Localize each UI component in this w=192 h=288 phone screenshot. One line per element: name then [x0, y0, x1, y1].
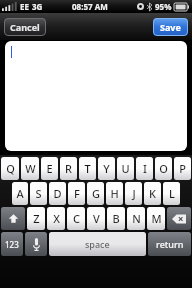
- staticText: return: [156, 238, 184, 250]
- staticText: 95%: [155, 1, 172, 12]
- button[interactable]: M: [147, 207, 165, 230]
- staticText: X: [53, 211, 60, 226]
- staticText: S: [35, 186, 42, 201]
- button[interactable]: C: [67, 207, 85, 230]
- button[interactable]: J: [125, 182, 142, 205]
- staticText: V: [93, 211, 100, 226]
- button[interactable]: V: [87, 207, 105, 230]
- staticText: 3G: [32, 1, 43, 12]
- staticText: A: [16, 186, 24, 201]
- staticText: B: [112, 211, 120, 226]
- staticText: M: [151, 211, 162, 226]
- button[interactable]: U: [117, 157, 134, 180]
- button[interactable]: K: [144, 182, 161, 205]
- button[interactable]: X: [47, 207, 65, 230]
- button[interactable]: Z: [27, 207, 45, 230]
- button[interactable]: Shift: [1, 207, 25, 230]
- button[interactable]: Save: [153, 18, 188, 36]
- staticText: EE: [20, 1, 29, 12]
- button[interactable]: I: [136, 157, 153, 180]
- button[interactable]: H: [106, 182, 123, 205]
- button[interactable]: 123: [1, 232, 23, 256]
- button[interactable]: P: [174, 157, 191, 180]
- staticText: 08:57 AM: [72, 1, 108, 12]
- staticText: 123: [5, 239, 19, 250]
- staticText: K: [149, 186, 156, 201]
- staticText: N: [132, 211, 141, 226]
- button[interactable]: N: [127, 207, 145, 230]
- button[interactable]: E: [41, 157, 58, 180]
- staticText: Q: [6, 161, 15, 176]
- staticText: J: [132, 186, 136, 201]
- button[interactable]: Cancel: [4, 18, 46, 36]
- button[interactable]: T: [79, 157, 96, 180]
- staticText: O: [159, 161, 168, 176]
- button[interactable]: B: [107, 207, 125, 230]
- staticText: Save: [160, 21, 181, 33]
- button[interactable]: space: [49, 232, 146, 256]
- button[interactable]: [5, 41, 187, 151]
- button[interactable]: Backspace: [167, 207, 191, 230]
- staticText: D: [53, 186, 62, 201]
- button[interactable]: L: [163, 182, 180, 205]
- button[interactable]: S: [30, 182, 47, 205]
- staticText: R: [65, 161, 72, 176]
- staticText: space: [85, 238, 110, 250]
- button[interactable]: Y: [98, 157, 115, 180]
- staticText: G: [92, 186, 100, 201]
- staticText: Z: [33, 211, 40, 226]
- staticText: I: [143, 161, 147, 176]
- staticText: F: [74, 186, 80, 201]
- button[interactable]: R: [60, 157, 77, 180]
- staticText: P: [179, 161, 186, 176]
- button[interactable]: D: [49, 182, 66, 205]
- button[interactable]: Dictate: [25, 232, 47, 256]
- button[interactable]: O: [155, 157, 172, 180]
- staticText: L: [169, 186, 175, 201]
- staticText: H: [110, 186, 119, 201]
- staticText: C: [73, 211, 80, 226]
- button[interactable]: return: [148, 232, 191, 256]
- button[interactable]: Q: [1, 157, 19, 180]
- button[interactable]: W: [21, 157, 39, 180]
- button[interactable]: F: [68, 182, 85, 205]
- staticText: Y: [103, 161, 110, 176]
- button[interactable]: G: [87, 182, 104, 205]
- button[interactable]: A: [12, 182, 28, 205]
- staticText: U: [121, 161, 130, 176]
- staticText: T: [84, 161, 91, 176]
- staticText: W: [25, 161, 36, 176]
- staticText: Cancel: [10, 21, 40, 33]
- staticText: E: [46, 161, 53, 176]
